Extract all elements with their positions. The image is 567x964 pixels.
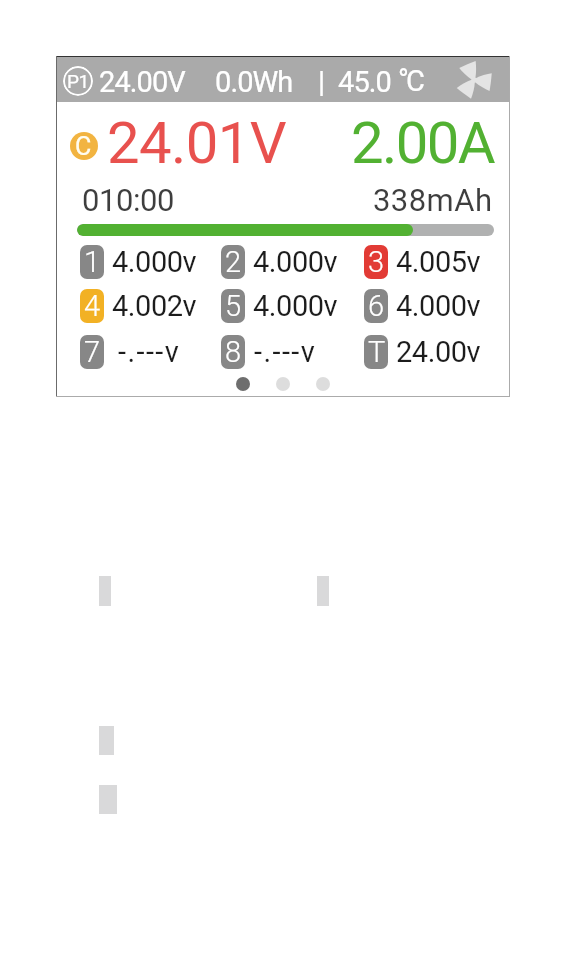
staticText: | [318, 65, 326, 99]
button[interactable]: Program P1 [63, 66, 93, 96]
staticText: 4.000v [396, 289, 481, 323]
button[interactable]: 6 [364, 289, 481, 323]
staticText: -.---v [254, 335, 317, 369]
staticText: 24.01V [107, 109, 287, 177]
staticText: 010:00 [82, 182, 174, 218]
button[interactable]: 5 [221, 289, 338, 323]
staticText: 24.00v [396, 335, 481, 369]
staticText: P1 [67, 70, 89, 92]
staticText: 8 [225, 335, 241, 369]
button[interactable]: 3 [364, 245, 481, 279]
button[interactable]: Page 1 [236, 377, 250, 391]
staticText: 4.000v [112, 245, 197, 279]
staticText: 45.0 [338, 65, 391, 99]
staticText: 4.000v [253, 289, 338, 323]
button[interactable]: 8 [221, 335, 317, 369]
staticText: 24.00V [99, 65, 185, 99]
staticText: 4.002v [112, 289, 197, 323]
button[interactable]: 2 [221, 245, 338, 279]
staticText: C [75, 132, 92, 160]
button[interactable]: 4 [80, 289, 197, 323]
button[interactable]: Fan [455, 61, 493, 99]
staticText: ° [398, 63, 409, 97]
staticText: 1 [84, 245, 100, 279]
button[interactable]: 7 [80, 335, 181, 369]
staticText: C [406, 64, 425, 98]
staticText: -.---v [118, 335, 181, 369]
staticText: 2 [225, 245, 241, 279]
staticText: 6 [368, 289, 384, 323]
staticText: 3 [368, 245, 384, 279]
button[interactable]: Page 3 [316, 377, 330, 391]
staticText: 2.00A [351, 109, 494, 177]
staticText: 7 [84, 335, 100, 369]
staticText: 4 [84, 289, 100, 323]
button[interactable]: Page 2 [276, 377, 290, 391]
button[interactable]: Charging [70, 132, 98, 160]
staticText: 5 [225, 289, 241, 323]
staticText: 338mAh [373, 182, 493, 218]
staticText: T [368, 335, 385, 369]
button[interactable]: T [364, 335, 481, 369]
staticText: 4.000v [253, 245, 338, 279]
button[interactable]: 1 [80, 245, 197, 279]
staticText: 4.005v [396, 245, 481, 279]
staticText: 0.0Wh [215, 65, 293, 99]
